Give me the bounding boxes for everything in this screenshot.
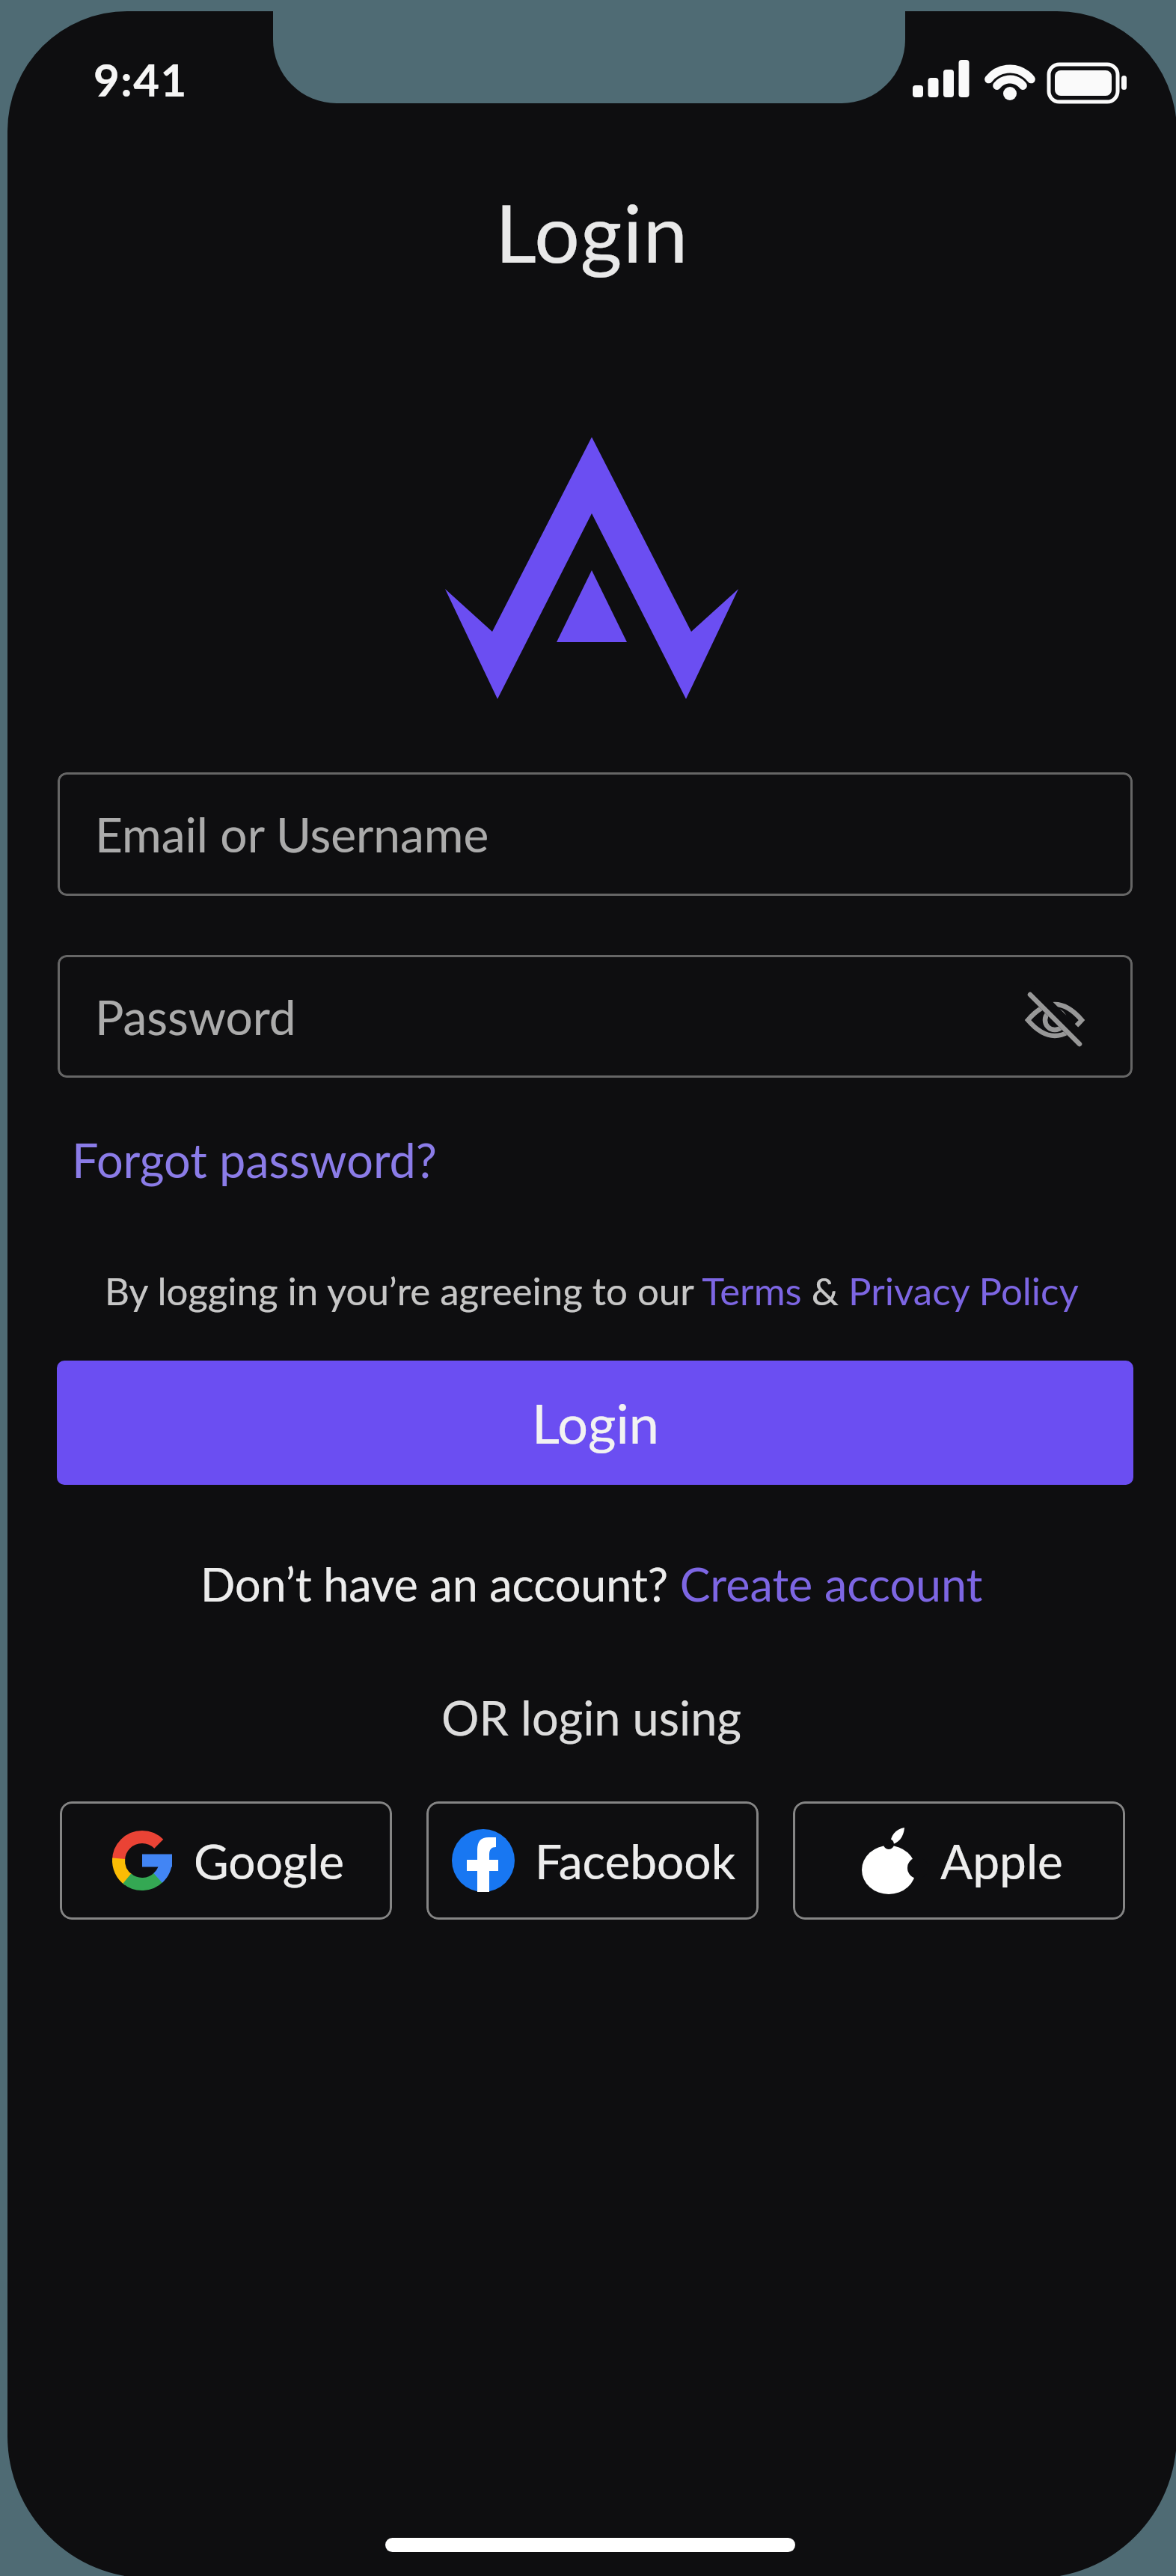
- button[interactable]: Google: [60, 1801, 392, 1920]
- staticText: Forgot password?: [72, 1132, 438, 1188]
- staticText: Don’t have an account? Create account: [200, 1557, 983, 1611]
- staticText: Facebook: [535, 1832, 736, 1890]
- staticText: Email or Username: [95, 805, 489, 863]
- button[interactable]: Facebook: [426, 1801, 759, 1920]
- staticText: 9:41: [94, 52, 188, 106]
- button[interactable]: Password: [58, 955, 1133, 1078]
- staticText: Password: [95, 988, 296, 1046]
- staticText: OR login using: [441, 1689, 742, 1746]
- staticText: Login: [495, 183, 689, 279]
- button[interactable]: Login: [57, 1361, 1133, 1485]
- staticText: Apple: [940, 1832, 1063, 1890]
- staticText: Login: [532, 1391, 659, 1455]
- button[interactable]: Forgot password?: [72, 1132, 438, 1188]
- button[interactable]: Don’t have an account? Create account: [200, 1557, 983, 1611]
- staticText: Google: [194, 1832, 344, 1890]
- button[interactable]: Apple: [793, 1801, 1125, 1920]
- staticText: By logging in you’re agreeing to our Ter…: [105, 1268, 1079, 1313]
- button[interactable]: [1025, 989, 1085, 1049]
- button[interactable]: Email or Username: [58, 772, 1133, 896]
